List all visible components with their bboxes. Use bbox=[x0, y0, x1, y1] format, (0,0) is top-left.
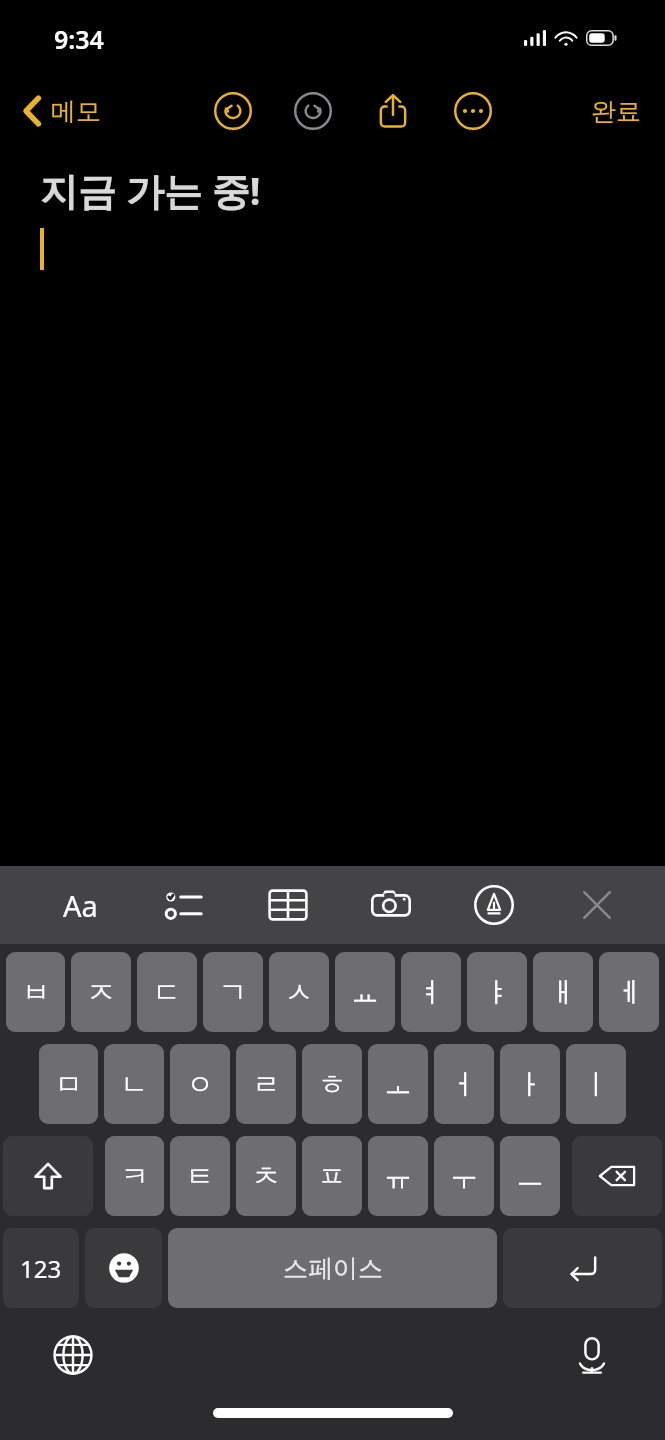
staticText: ㄱ bbox=[219, 975, 247, 1010]
staticText: ㄷ bbox=[153, 975, 181, 1010]
staticText: ㅣ bbox=[582, 1067, 610, 1102]
button[interactable]: ㅁ bbox=[39, 1044, 98, 1124]
button[interactable]: ㅇ bbox=[170, 1044, 230, 1124]
staticText: ㅛ bbox=[351, 975, 379, 1010]
staticText: ㄹ bbox=[252, 1067, 280, 1102]
button[interactable]: ㅋ bbox=[105, 1136, 164, 1216]
button[interactable]: ㄹ bbox=[236, 1044, 296, 1124]
button[interactable]: Dictation bbox=[561, 1324, 623, 1386]
button[interactable]: ㅐ bbox=[533, 952, 593, 1032]
staticText: ㅜ bbox=[450, 1159, 478, 1194]
button[interactable]: 스페이스 bbox=[168, 1228, 497, 1308]
button[interactable]: Backspace bbox=[572, 1136, 662, 1216]
button[interactable]: Emoji bbox=[85, 1228, 162, 1308]
button[interactable]: ㄷ bbox=[137, 952, 197, 1032]
button[interactable]: ㄴ bbox=[104, 1044, 164, 1124]
button[interactable]: 메모 bbox=[16, 89, 107, 133]
button[interactable]: Close keyboard bbox=[569, 877, 625, 933]
button[interactable]: Shift bbox=[3, 1136, 93, 1216]
staticText: ㅗ bbox=[384, 1067, 412, 1102]
staticText: ㅈ bbox=[87, 975, 115, 1010]
staticText: 스페이스 bbox=[283, 1253, 383, 1284]
button[interactable]: Next keyboard bbox=[42, 1324, 104, 1386]
button[interactable]: ㅏ bbox=[500, 1044, 560, 1124]
staticText: ㅏ bbox=[516, 1067, 544, 1102]
staticText: ㅅ bbox=[285, 975, 313, 1010]
staticText: 123 bbox=[20, 1252, 62, 1285]
button[interactable]: Redo bbox=[289, 87, 337, 135]
staticText: 완료 bbox=[591, 96, 641, 127]
button[interactable]: ㅅ bbox=[269, 952, 329, 1032]
button[interactable]: Markup bbox=[466, 877, 522, 933]
button[interactable]: ㅌ bbox=[170, 1136, 230, 1216]
staticText: Aa bbox=[63, 886, 98, 925]
staticText: ㅁ bbox=[55, 1067, 83, 1102]
staticText: ㅓ bbox=[450, 1067, 478, 1102]
staticText: ㅂ bbox=[22, 975, 50, 1010]
staticText: ㅌ bbox=[186, 1159, 214, 1194]
button[interactable]: ㅡ bbox=[500, 1136, 560, 1216]
button[interactable]: 123 bbox=[3, 1228, 79, 1308]
staticText: ㅡ bbox=[516, 1159, 544, 1194]
staticText: ㄴ bbox=[120, 1067, 148, 1102]
button[interactable]: ㅛ bbox=[335, 952, 395, 1032]
staticText: 메모 bbox=[51, 96, 101, 127]
button[interactable]: ㅎ bbox=[302, 1044, 362, 1124]
button[interactable]: ㅕ bbox=[401, 952, 461, 1032]
button[interactable]: More options bbox=[449, 87, 497, 135]
button[interactable]: ㅊ bbox=[236, 1136, 296, 1216]
button[interactable]: ㅂ bbox=[6, 952, 65, 1032]
button[interactable]: ㅗ bbox=[368, 1044, 428, 1124]
button[interactable]: ㅔ bbox=[599, 952, 659, 1032]
button[interactable]: ㅈ bbox=[71, 952, 131, 1032]
staticText: ㅐ bbox=[549, 975, 577, 1010]
button[interactable]: Share bbox=[369, 87, 417, 135]
button[interactable]: 완료 bbox=[585, 90, 647, 133]
staticText: ㅕ bbox=[417, 975, 445, 1010]
staticText: ㅠ bbox=[384, 1159, 412, 1194]
button[interactable]: ㅓ bbox=[434, 1044, 494, 1124]
button[interactable]: ㅣ bbox=[566, 1044, 626, 1124]
button[interactable]: Camera bbox=[363, 877, 419, 933]
button[interactable]: Return bbox=[503, 1228, 662, 1308]
staticText: ㅔ bbox=[615, 975, 643, 1010]
button[interactable]: Table bbox=[260, 877, 316, 933]
staticText: 지금 가는 중! bbox=[40, 164, 261, 216]
button[interactable]: ㅍ bbox=[302, 1136, 362, 1216]
staticText: ㅍ bbox=[318, 1159, 346, 1194]
button[interactable]: ㅑ bbox=[467, 952, 527, 1032]
staticText: ㅊ bbox=[252, 1159, 280, 1194]
button[interactable]: ㅠ bbox=[368, 1136, 428, 1216]
staticText: 9:34 bbox=[54, 22, 104, 56]
button[interactable]: ㅜ bbox=[434, 1136, 494, 1216]
staticText: ㅇ bbox=[186, 1067, 214, 1102]
staticText: ㅋ bbox=[121, 1159, 149, 1194]
button[interactable]: Checklist bbox=[156, 877, 212, 933]
staticText: ㅑ bbox=[483, 975, 511, 1010]
staticText: ㅎ bbox=[318, 1067, 346, 1102]
button[interactable]: Undo bbox=[209, 87, 257, 135]
button[interactable]: Text format bbox=[52, 877, 108, 933]
button[interactable]: ㄱ bbox=[203, 952, 263, 1032]
